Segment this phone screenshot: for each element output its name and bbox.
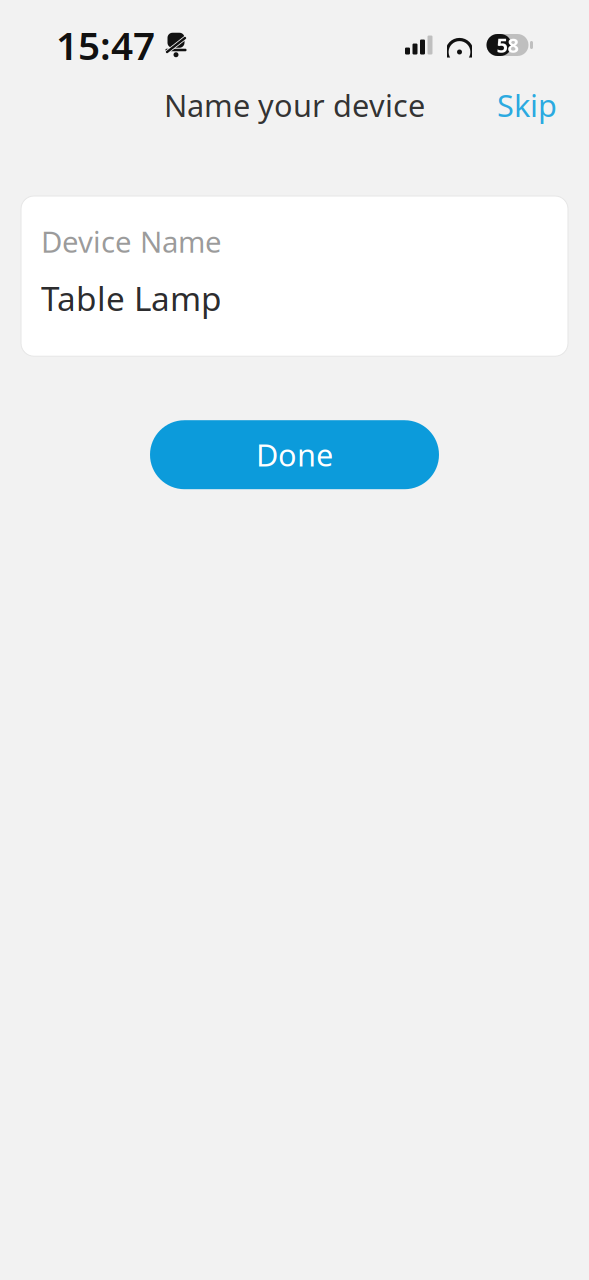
staticText: Name your device (164, 85, 425, 125)
staticText: 58 (496, 32, 518, 58)
staticText: Done (256, 434, 333, 475)
staticText: 15:47 (56, 19, 155, 71)
staticText: Device Name (41, 222, 222, 261)
staticText: Skip (497, 85, 557, 125)
button[interactable]: Skip (487, 79, 567, 131)
staticText: Table Lamp (41, 276, 222, 320)
button[interactable]: Done (150, 420, 439, 489)
